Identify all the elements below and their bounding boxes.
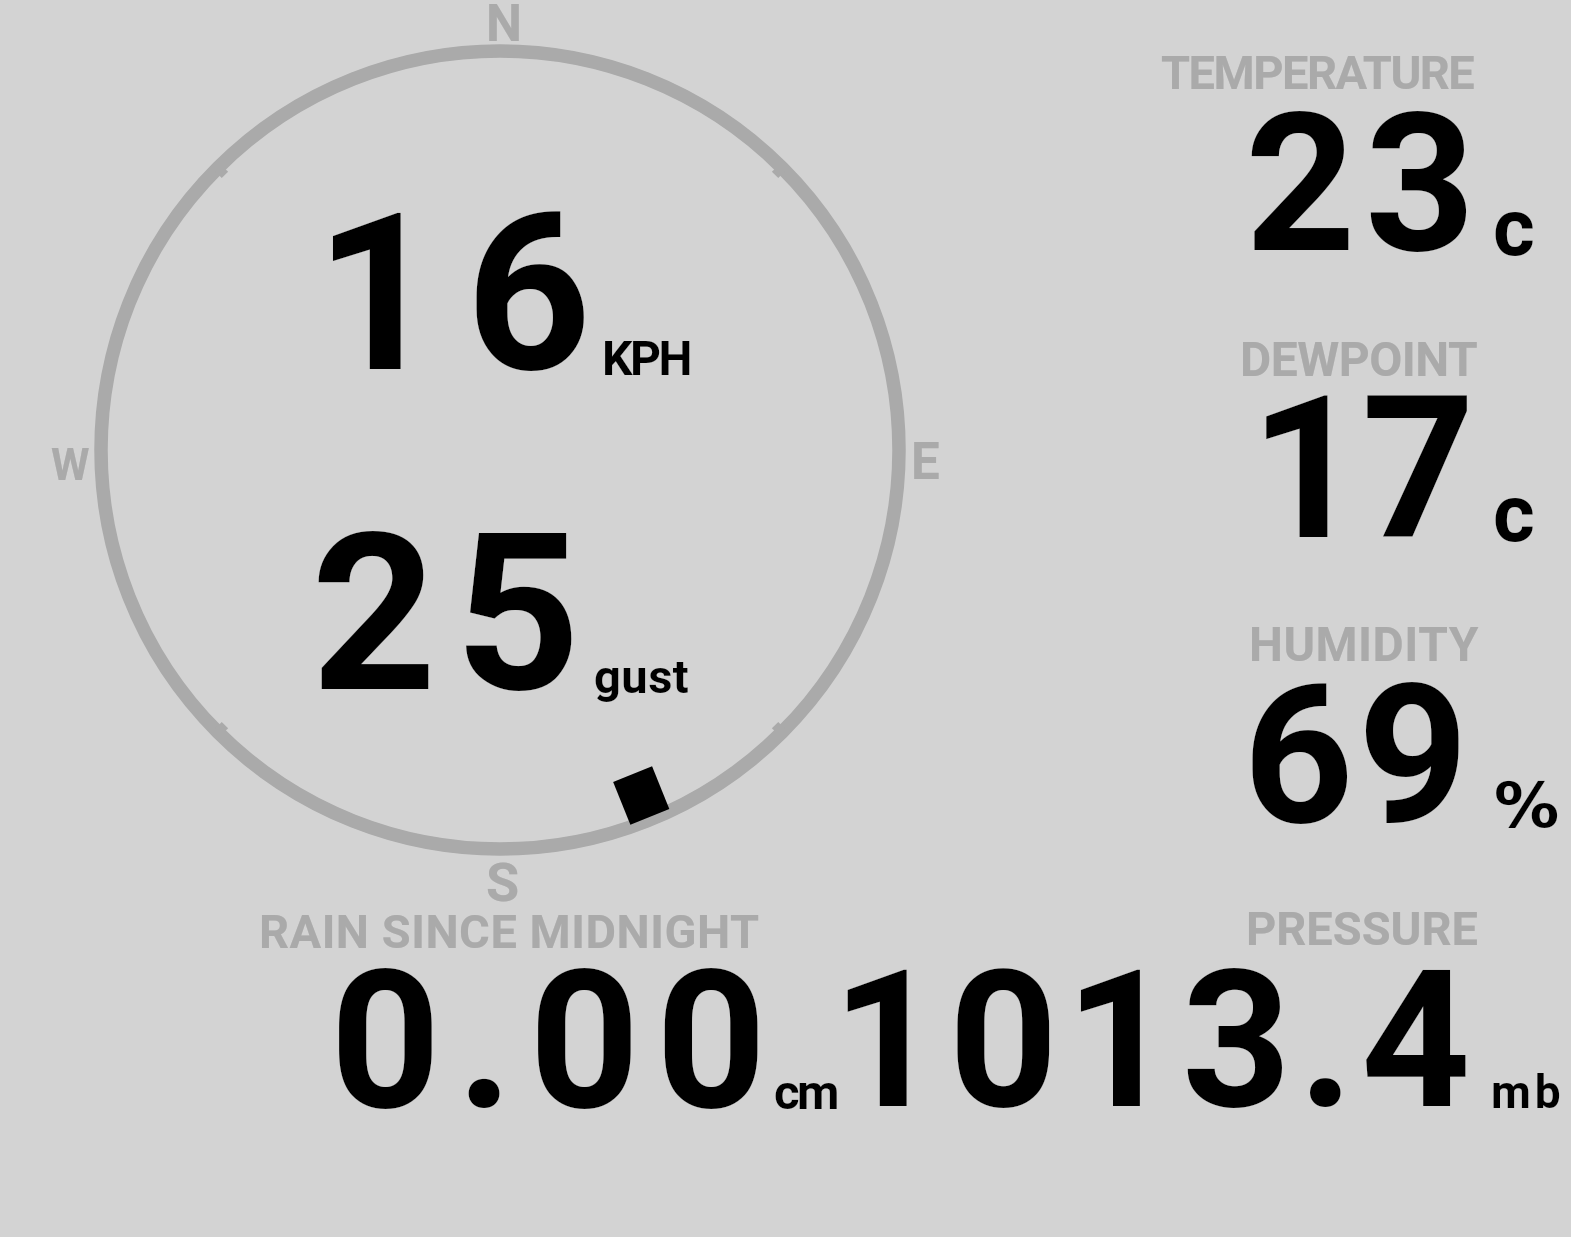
staticText: 69 bbox=[1243, 643, 1473, 869]
staticText: mb bbox=[1491, 1065, 1565, 1119]
button[interactable]: Temperature 23 degrees Celsius bbox=[1150, 40, 1565, 270]
staticText: N bbox=[486, 0, 523, 54]
button[interactable]: Pressure 1013.4 mb bbox=[850, 900, 1565, 1120]
staticText: S bbox=[486, 851, 520, 914]
button[interactable]: Dewpoint 17 degrees Celsius bbox=[1150, 325, 1565, 555]
staticText: 1013.4 bbox=[832, 929, 1478, 1153]
staticText: W bbox=[51, 439, 90, 491]
staticText: gust bbox=[594, 649, 690, 704]
staticText: DEWPOINT bbox=[1240, 331, 1478, 387]
staticText: TEMPERATURE bbox=[1161, 45, 1474, 100]
staticText: cm bbox=[774, 1064, 837, 1121]
staticText: 16 bbox=[315, 166, 617, 423]
staticText: KPH bbox=[602, 330, 690, 386]
staticText: 0.00 bbox=[330, 928, 783, 1154]
button[interactable]: Wind 16 KPH, gusting 25, direction south… bbox=[90, 40, 910, 860]
staticText: 25 bbox=[311, 486, 599, 743]
staticText: PRESSURE bbox=[1246, 901, 1478, 956]
staticText: 23 bbox=[1245, 71, 1485, 297]
staticText: E bbox=[911, 432, 940, 492]
button[interactable]: Humidity 69 percent bbox=[1150, 610, 1565, 840]
staticText: c bbox=[1493, 467, 1535, 561]
staticText: HUMIDITY bbox=[1249, 616, 1479, 672]
button[interactable]: Rain since midnight 0.00 cm bbox=[250, 900, 850, 1120]
staticText: 17 bbox=[1250, 353, 1474, 585]
staticText: RAIN SINCE MIDNIGHT bbox=[259, 904, 760, 959]
staticText: c bbox=[1493, 181, 1535, 275]
staticText: % bbox=[1494, 769, 1560, 841]
